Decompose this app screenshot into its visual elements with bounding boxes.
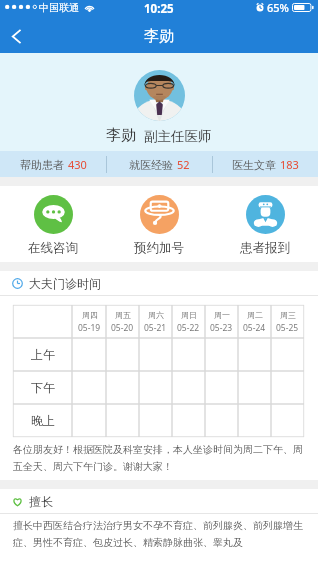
- staticText: 10:25: [144, 1, 174, 17]
- button[interactable]: Doctor photo: [134, 70, 185, 121]
- staticText: 05-21: [144, 322, 167, 334]
- staticText: 周一: [214, 310, 230, 320]
- staticText: 周日: [181, 310, 197, 320]
- button[interactable]: [139, 371, 172, 404]
- staticText: 05-20: [111, 322, 134, 334]
- button[interactable]: [172, 371, 205, 404]
- button[interactable]: [238, 404, 271, 437]
- button[interactable]: [238, 338, 271, 371]
- staticText: 430: [68, 157, 87, 172]
- staticText: 李勋: [106, 126, 136, 145]
- button[interactable]: 帮助患者: [0, 157, 106, 172]
- other: 患者报到: [246, 195, 285, 234]
- button[interactable]: 在线咨询: [0, 186, 106, 262]
- button[interactable]: [72, 371, 106, 404]
- staticText: 擅长中西医结合疗法治疗男女不孕不育症、前列腺炎、前列腺增生症、男性不育症、包皮过…: [13, 519, 306, 549]
- other: 在线咨询: [34, 195, 73, 234]
- staticText: 05-22: [177, 322, 200, 334]
- button[interactable]: [106, 371, 139, 404]
- staticText: 擅长: [29, 494, 53, 509]
- staticText: 医生文章: [232, 158, 276, 172]
- staticText: 李勋: [144, 27, 174, 46]
- staticText: 周三: [280, 310, 296, 320]
- staticText: 晚上: [31, 413, 55, 428]
- button[interactable]: [271, 338, 304, 371]
- staticText: 预约加号: [134, 240, 184, 256]
- staticText: 52: [177, 157, 190, 172]
- other: 预约加号: [140, 195, 179, 234]
- staticText: 下午: [31, 380, 55, 395]
- staticText: 周二: [247, 310, 263, 320]
- staticText: 各位朋友好！根据医院及科室安排，本人坐诊时间为周二下午、周五全天、周六下午门诊。…: [13, 443, 306, 473]
- staticText: 患者报到: [240, 240, 290, 256]
- button[interactable]: [106, 338, 139, 371]
- staticText: 中国联通: [39, 1, 79, 14]
- button[interactable]: [205, 338, 238, 371]
- button[interactable]: 预约加号: [106, 186, 212, 262]
- staticText: 05-23: [210, 322, 233, 334]
- button[interactable]: [139, 338, 172, 371]
- staticText: 大夫门诊时间: [29, 276, 101, 291]
- button[interactable]: [238, 371, 271, 404]
- staticText: 周五: [115, 310, 131, 320]
- button[interactable]: [172, 338, 205, 371]
- button[interactable]: 患者报到: [212, 186, 318, 262]
- staticText: 上午: [31, 347, 55, 362]
- button[interactable]: [72, 338, 106, 371]
- button[interactable]: [106, 404, 139, 437]
- staticText: 05-24: [243, 322, 266, 334]
- button[interactable]: [271, 371, 304, 404]
- staticText: 副主任医师: [144, 128, 212, 145]
- button[interactable]: 医生文章: [213, 157, 318, 172]
- staticText: 周六: [148, 310, 164, 320]
- button[interactable]: [205, 404, 238, 437]
- staticText: 就医经验: [129, 158, 173, 172]
- staticText: 周四: [82, 310, 98, 320]
- button[interactable]: [271, 404, 304, 437]
- staticText: 在线咨询: [28, 240, 78, 256]
- button[interactable]: 就医经验: [107, 157, 212, 172]
- staticText: 帮助患者: [20, 158, 64, 172]
- button[interactable]: [72, 404, 106, 437]
- staticText: 05-25: [276, 322, 299, 334]
- button[interactable]: [172, 404, 205, 437]
- button[interactable]: Back: [0, 20, 33, 53]
- button[interactable]: [139, 404, 172, 437]
- staticText: 65%: [267, 0, 289, 15]
- staticText: 183: [280, 157, 299, 172]
- button[interactable]: [205, 371, 238, 404]
- staticText: 05-19: [78, 322, 101, 334]
